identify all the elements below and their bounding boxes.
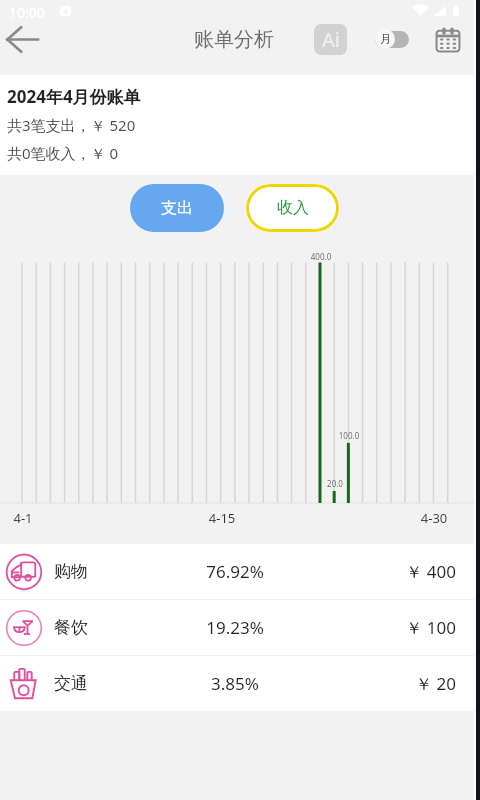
staticText: ￥ 20	[336, 672, 456, 695]
staticText: 4-30	[394, 509, 474, 527]
staticText: 4-15	[182, 509, 262, 527]
staticText: 10:00	[9, 3, 45, 22]
button[interactable]: 餐饮	[0, 600, 474, 655]
button[interactable]: 购物	[0, 544, 474, 599]
button[interactable]: Month toggle	[375, 31, 409, 48]
staticText: 19.23%	[195, 616, 275, 639]
staticText: 2024年4月份账单	[7, 85, 141, 108]
staticText: ￥ 400	[336, 560, 456, 583]
button[interactable]: Calendar	[432, 24, 463, 55]
staticText: 共3笔支出，￥ 520	[7, 115, 136, 135]
staticText: 支出	[161, 198, 193, 218]
staticText: 400.0	[291, 251, 351, 262]
staticText: Ai	[322, 26, 340, 53]
staticText: 账单分析	[194, 27, 274, 52]
staticText: 共0笔收入，￥ 0	[7, 143, 119, 163]
staticText: 交通	[54, 673, 88, 694]
button[interactable]: Ai	[314, 24, 347, 55]
staticText: 月	[380, 32, 391, 46]
staticText: ￥ 100	[336, 616, 456, 639]
staticText: 20.0	[305, 478, 365, 489]
button[interactable]: 收入	[246, 184, 339, 232]
staticText: 4-1	[0, 509, 63, 527]
staticText: 3.85%	[195, 672, 275, 695]
button[interactable]: 支出	[130, 184, 224, 232]
staticText: 76.92%	[195, 560, 275, 583]
button[interactable]: 交通	[0, 656, 474, 711]
staticText: 100.0	[319, 430, 379, 441]
staticText: 购物	[54, 561, 88, 582]
button[interactable]: Back	[0, 24, 44, 55]
staticText: 收入	[277, 198, 309, 218]
staticText: 餐饮	[54, 617, 88, 638]
